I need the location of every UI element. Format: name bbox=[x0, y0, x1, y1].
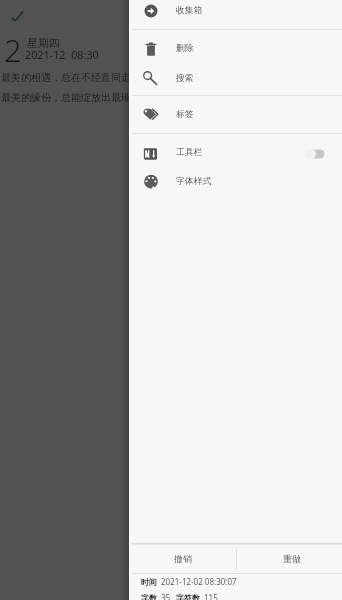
staticText: 重做 bbox=[283, 553, 301, 564]
button[interactable]: 搜索 bbox=[129, 63, 342, 95]
staticText: 工具栏 bbox=[176, 147, 203, 158]
staticText: 字体样式 bbox=[176, 176, 212, 187]
staticText: 标签 bbox=[176, 109, 194, 120]
staticText: 字数 bbox=[141, 593, 157, 600]
staticText: 最美的相遇，总在不经意间走近 bbox=[1, 71, 141, 84]
staticText: 115 bbox=[204, 592, 218, 600]
button[interactable]: 字体样式 bbox=[129, 168, 342, 200]
staticText: 撤销 bbox=[174, 553, 192, 564]
button[interactable]: 标签 bbox=[129, 96, 342, 133]
staticText: 搜索 bbox=[176, 73, 194, 84]
staticText: 时间 bbox=[141, 577, 157, 587]
staticText: 2021-12 08:30 bbox=[25, 47, 99, 62]
button[interactable]: Toggle toolbar bbox=[305, 147, 329, 161]
staticText: 字符数 bbox=[176, 593, 200, 600]
button[interactable]: 收集箱 bbox=[129, 0, 342, 29]
staticText: 收集箱 bbox=[176, 5, 203, 16]
button[interactable]: Done bbox=[8, 8, 24, 24]
button[interactable]: 撤销 bbox=[129, 544, 236, 573]
button[interactable]: 工具栏 bbox=[129, 134, 342, 168]
staticText: 删除 bbox=[176, 43, 194, 54]
staticText: 2 bbox=[4, 29, 22, 71]
staticText: 2021-12-02 08:30:07 bbox=[161, 576, 237, 587]
button[interactable]: 删除 bbox=[129, 30, 342, 63]
staticText: 星期四 bbox=[27, 36, 60, 50]
staticText: 最美的缘份，总能绽放出最璀璨 bbox=[1, 91, 141, 104]
staticText: 35 bbox=[161, 592, 171, 600]
button[interactable]: 重做 bbox=[237, 544, 342, 573]
